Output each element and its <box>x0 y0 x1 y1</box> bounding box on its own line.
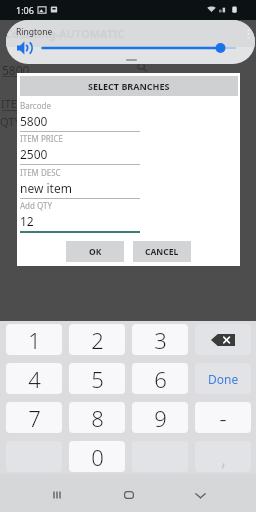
button[interactable]: Mute ringtone <box>17 41 33 55</box>
staticText: SELECT BRANCHES <box>88 80 170 92</box>
staticText: ITEM PRICE <box>20 133 63 144</box>
button[interactable]: 0 <box>69 441 125 472</box>
button[interactable]: 5 <box>69 363 125 394</box>
staticText: 8 <box>91 403 104 433</box>
staticText: ITEM DESC <box>20 167 61 178</box>
staticText: new item <box>20 180 72 196</box>
staticText: 6 <box>154 364 167 394</box>
button[interactable]: 8 <box>69 402 125 433</box>
staticText: Barcode <box>20 100 51 111</box>
staticText: CANCEL <box>145 246 179 258</box>
button[interactable]: 4 <box>6 363 62 394</box>
button[interactable]: Recent apps <box>45 483 69 507</box>
staticText: 12 <box>20 213 34 229</box>
button[interactable]: - <box>195 402 251 433</box>
staticText: 3 <box>154 325 167 355</box>
button[interactable]: Backspace <box>195 324 251 355</box>
staticText: , <box>221 442 226 472</box>
staticText: 2 <box>91 325 104 355</box>
staticText: 5 <box>91 364 104 394</box>
button[interactable]: Done <box>195 363 251 394</box>
staticText: Counting-AUTOMATIC <box>6 26 125 41</box>
staticText: ITEM <box>1 96 27 111</box>
staticText: QTY <box>0 114 21 129</box>
staticText: Ringtone <box>16 26 53 38</box>
staticText: 1 <box>28 325 41 355</box>
staticText: 4 <box>28 364 41 394</box>
staticText: 1:06 <box>16 4 34 16</box>
staticText: 2500 <box>20 146 48 162</box>
button[interactable]: OK <box>66 241 124 262</box>
staticText: OK <box>89 246 102 258</box>
button[interactable]: 7 <box>6 402 62 433</box>
button[interactable]: Home <box>117 483 141 507</box>
button[interactable]: 2 <box>69 324 125 355</box>
button[interactable]: 9 <box>132 402 188 433</box>
button[interactable]: 1 <box>6 324 62 355</box>
button[interactable]: More options <box>245 28 252 40</box>
staticText: 0 <box>91 442 104 472</box>
staticText: 7 <box>28 403 41 433</box>
staticText: 5800 <box>2 62 30 78</box>
staticText: Add QTY <box>20 200 53 211</box>
button[interactable]: Hide keyboard <box>188 484 212 508</box>
staticText: 9 <box>154 403 167 433</box>
staticText: Done <box>208 371 239 387</box>
staticText: 5800 <box>20 113 48 129</box>
staticText: - <box>219 403 227 433</box>
button[interactable]: 3 <box>132 324 188 355</box>
button[interactable]: CANCEL <box>133 241 191 262</box>
button[interactable]: 6 <box>132 363 188 394</box>
